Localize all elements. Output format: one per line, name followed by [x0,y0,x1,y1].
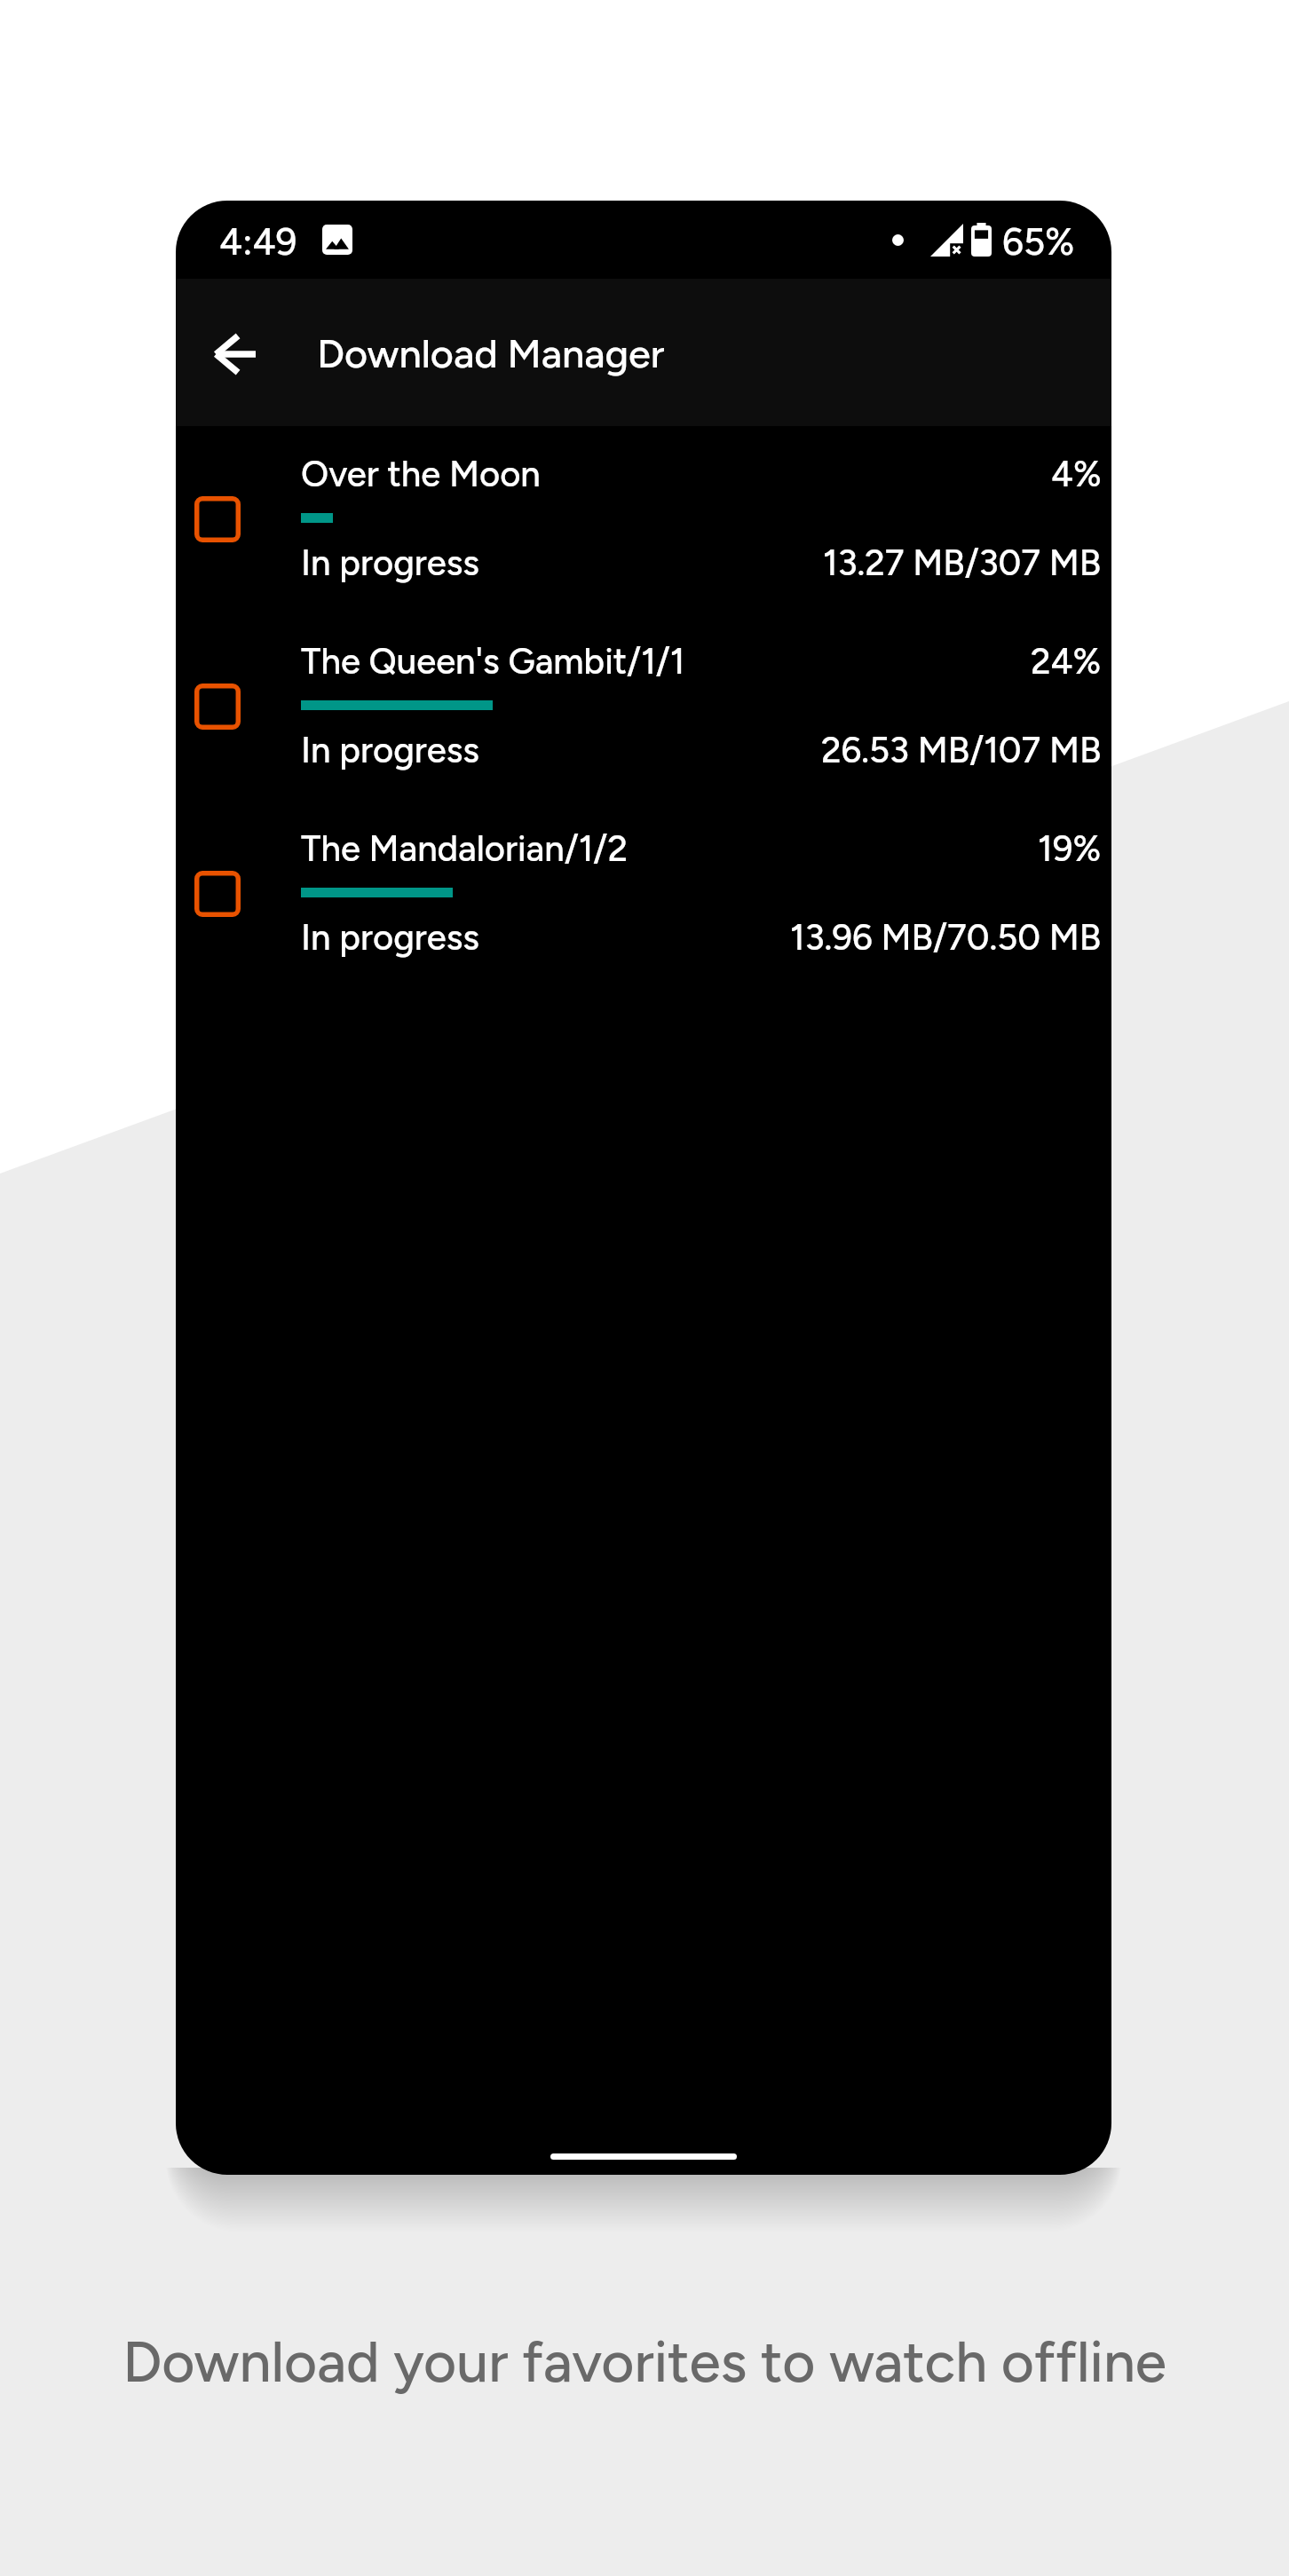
staticText: The Queen's Gambit/1/1 [301,640,685,683]
staticText: The Mandalorian/1/2 [301,827,628,870]
staticText: 13.96 MB/70.50 MB [790,916,1102,959]
staticText: 13.27 MB/307 MB [823,541,1102,584]
staticText: In progress [301,541,479,584]
staticText: Download Manager [317,329,665,377]
staticText: 65% [1002,219,1075,264]
button[interactable]: Back [194,314,274,394]
button[interactable]: Select The Mandalorian/1/2 [176,813,1111,1000]
staticText: 19% [1038,827,1102,870]
staticText: 24% [1031,640,1102,683]
staticText: 4% [1051,453,1102,495]
staticText: In progress [301,916,479,959]
button[interactable]: Select Over the Moon [176,439,1111,626]
staticText: In progress [301,729,479,771]
button[interactable]: Select The Queen's Gambit/1/1 [176,626,1111,813]
staticText: Over the Moon [301,453,541,495]
staticText: 26.53 MB/107 MB [821,729,1102,771]
button[interactable]: Select The Queen's Gambit/1/1 [194,684,241,730]
button[interactable]: Select The Mandalorian/1/2 [194,871,241,917]
staticText: Download your favorites to watch offline [0,2327,1289,2396]
button[interactable]: Select Over the Moon [194,496,241,542]
staticText: 4:49 [219,219,297,264]
